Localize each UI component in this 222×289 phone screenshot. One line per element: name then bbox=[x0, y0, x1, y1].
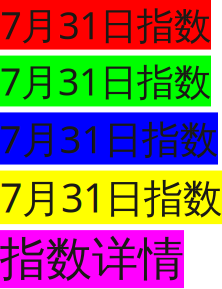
staticText: 指数详情 bbox=[0, 230, 184, 288]
staticText: 7月31日指数 bbox=[0, 56, 211, 106]
staticText: 7月31日指数 bbox=[0, 112, 218, 164]
staticText: 7月31日指数 bbox=[0, 170, 222, 224]
staticText: 7月31日指数 bbox=[0, 0, 211, 50]
